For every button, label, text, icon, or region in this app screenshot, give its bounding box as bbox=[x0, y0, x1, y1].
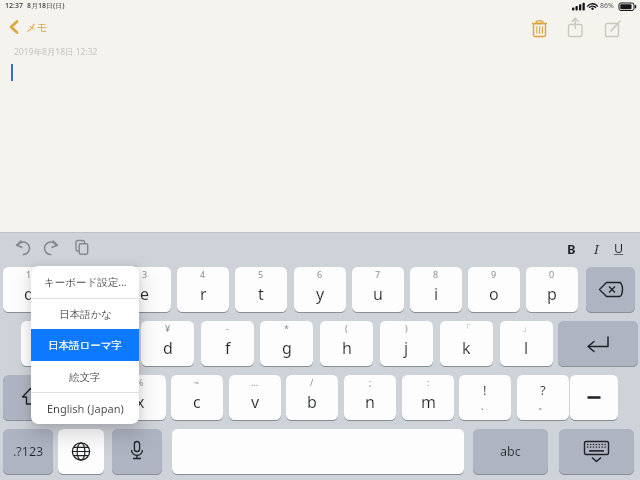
button[interactable]: ? bbox=[517, 375, 569, 420]
staticText: l bbox=[524, 337, 529, 359]
button[interactable]: ; bbox=[344, 375, 396, 420]
button[interactable]: 日本語ローマ字 bbox=[31, 329, 139, 361]
button[interactable]: 4 bbox=[177, 267, 229, 312]
button[interactable] bbox=[558, 321, 638, 366]
button[interactable]: : bbox=[402, 375, 454, 420]
button[interactable] bbox=[586, 267, 635, 312]
staticText: 6 bbox=[317, 268, 323, 280]
button[interactable]: 7 bbox=[352, 267, 404, 312]
button[interactable]: English (Japan) bbox=[31, 392, 139, 424]
staticText: - bbox=[226, 322, 229, 334]
staticText: * bbox=[284, 322, 289, 334]
staticText: p bbox=[547, 283, 557, 305]
button[interactable]: a bbox=[21, 321, 74, 366]
button[interactable]: キーボード設定... bbox=[31, 266, 139, 298]
button[interactable]: 2 bbox=[61, 267, 113, 312]
staticText: abc bbox=[500, 443, 521, 460]
button[interactable]: 絵文字 bbox=[31, 361, 139, 393]
staticText: 日本語ローマ字 bbox=[48, 339, 122, 352]
button[interactable]: / bbox=[286, 375, 338, 420]
staticText: 1 bbox=[26, 268, 32, 280]
staticText: 9 bbox=[491, 268, 497, 280]
staticText: z bbox=[78, 391, 86, 413]
staticText: 8月18日(日) bbox=[27, 1, 65, 11]
button[interactable]: 「 bbox=[440, 321, 493, 366]
staticText: d bbox=[163, 337, 173, 359]
staticText: k bbox=[462, 337, 471, 359]
button[interactable]: .?123 bbox=[3, 429, 53, 474]
staticText: English (Japan) bbox=[47, 401, 124, 416]
button[interactable]: 9 bbox=[468, 267, 520, 312]
staticText: ( bbox=[345, 322, 348, 334]
staticText: キーボード設定... bbox=[44, 275, 127, 289]
staticText: ~ bbox=[194, 376, 200, 388]
staticText: q bbox=[24, 283, 34, 305]
staticText: 4 bbox=[200, 268, 206, 280]
staticText: ! bbox=[483, 381, 487, 399]
staticText: r bbox=[200, 283, 207, 305]
staticText: / bbox=[310, 376, 314, 388]
button[interactable]: 8 bbox=[410, 267, 462, 312]
staticText: e bbox=[140, 283, 150, 305]
staticText: 日本語かな bbox=[59, 308, 112, 321]
staticText: .?123 bbox=[13, 443, 44, 460]
staticText: s bbox=[104, 337, 112, 359]
staticText: m bbox=[421, 391, 436, 413]
button[interactable]: - bbox=[201, 321, 254, 366]
staticText: 、 bbox=[480, 399, 490, 412]
staticText: ; bbox=[369, 376, 372, 388]
staticText: u bbox=[373, 283, 383, 305]
staticText: 2019年8月18日 12:32 bbox=[14, 46, 98, 58]
button[interactable]: % bbox=[114, 375, 166, 420]
button[interactable]: 0 bbox=[526, 267, 578, 312]
staticText: b bbox=[307, 391, 317, 413]
button[interactable]: 」 bbox=[500, 321, 553, 366]
staticText: U bbox=[614, 240, 624, 257]
button[interactable]: z bbox=[56, 375, 108, 420]
staticText: y bbox=[316, 283, 325, 305]
staticText: n bbox=[365, 391, 375, 413]
button[interactable]: 3 bbox=[119, 267, 171, 312]
button[interactable]: * bbox=[260, 321, 313, 366]
button[interactable]: 6 bbox=[294, 267, 346, 312]
staticText: 12:37 bbox=[5, 1, 23, 11]
staticText: 7 bbox=[375, 268, 381, 280]
staticText: 「 bbox=[462, 322, 471, 333]
staticText: : bbox=[427, 376, 430, 388]
button[interactable] bbox=[3, 375, 52, 420]
staticText: j bbox=[404, 337, 409, 359]
staticText: 8 bbox=[433, 268, 439, 280]
button[interactable]: 1 bbox=[3, 267, 55, 312]
button[interactable] bbox=[112, 429, 162, 474]
staticText: \ bbox=[106, 322, 110, 334]
staticText: 。 bbox=[538, 399, 548, 412]
button[interactable]: abc bbox=[473, 429, 548, 474]
button[interactable]: 日本語かな bbox=[31, 298, 139, 330]
button[interactable] bbox=[58, 429, 104, 474]
staticText: h bbox=[342, 337, 352, 359]
staticText: ? bbox=[540, 381, 546, 399]
staticText: x bbox=[136, 391, 145, 413]
staticText: c bbox=[193, 391, 201, 413]
staticText: f bbox=[225, 337, 231, 359]
button[interactable] bbox=[570, 375, 618, 420]
button[interactable]: ( bbox=[320, 321, 373, 366]
button[interactable]: ¥ bbox=[141, 321, 194, 366]
button[interactable]: ~ bbox=[171, 375, 223, 420]
button[interactable]: ! bbox=[459, 375, 511, 420]
staticText: 0 bbox=[549, 268, 555, 280]
button[interactable]: \ bbox=[81, 321, 134, 366]
staticText: g bbox=[282, 337, 292, 359]
button[interactable]: … bbox=[229, 375, 281, 420]
button[interactable] bbox=[559, 429, 634, 474]
staticText: a bbox=[43, 337, 52, 359]
staticText: t bbox=[258, 283, 264, 305]
staticText: 5 bbox=[258, 268, 264, 280]
staticText: % bbox=[136, 376, 144, 388]
staticText: w bbox=[81, 283, 94, 305]
button[interactable]: 5 bbox=[235, 267, 287, 312]
button[interactable]: ) bbox=[380, 321, 433, 366]
staticText: I bbox=[594, 240, 599, 258]
